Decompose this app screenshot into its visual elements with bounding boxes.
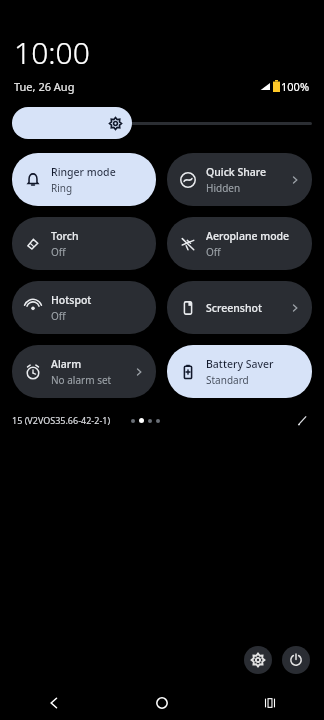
- staticText: Hidden: [206, 181, 241, 195]
- staticText: Off: [206, 245, 221, 259]
- staticText: 10:00: [14, 32, 90, 73]
- staticText: Alarm: [51, 357, 82, 371]
- button[interactable]: Battery Saver: [167, 345, 312, 398]
- button[interactable]: Hotspot: [12, 281, 156, 334]
- staticText: Ring: [51, 181, 73, 195]
- button[interactable]: Torch: [12, 217, 156, 270]
- staticText: No alarm set: [51, 373, 112, 387]
- staticText: Quick Share: [206, 165, 267, 179]
- button[interactable]: Power: [282, 646, 310, 674]
- staticText: Screenshot: [206, 301, 262, 315]
- button[interactable]: Recent apps: [216, 686, 324, 720]
- button[interactable]: Alarm: [12, 345, 156, 398]
- staticText: Off: [51, 245, 66, 259]
- button[interactable]: Ringer mode: [12, 153, 156, 206]
- staticText: Aeroplane mode: [206, 229, 290, 243]
- button[interactable]: Aeroplane mode: [167, 217, 312, 270]
- button[interactable]: Edit tiles: [292, 410, 312, 430]
- button[interactable]: Settings: [244, 646, 272, 674]
- staticText: 100%: [281, 79, 310, 94]
- button[interactable]: [12, 107, 312, 139]
- button[interactable]: Screenshot: [167, 281, 312, 334]
- staticText: 15 (V2VOS35.66-42-2-1): [12, 414, 111, 426]
- staticText: Standard: [206, 373, 249, 387]
- button[interactable]: Quick Share: [167, 153, 312, 206]
- staticText: Torch: [51, 229, 79, 243]
- staticText: Tue, 26 Aug: [14, 79, 75, 94]
- staticText: Ringer mode: [51, 165, 116, 179]
- staticText: Off: [51, 309, 66, 323]
- button[interactable]: Back: [0, 686, 108, 720]
- staticText: Battery Saver: [206, 357, 274, 371]
- staticText: Hotspot: [51, 293, 92, 307]
- button[interactable]: Home: [108, 686, 216, 720]
